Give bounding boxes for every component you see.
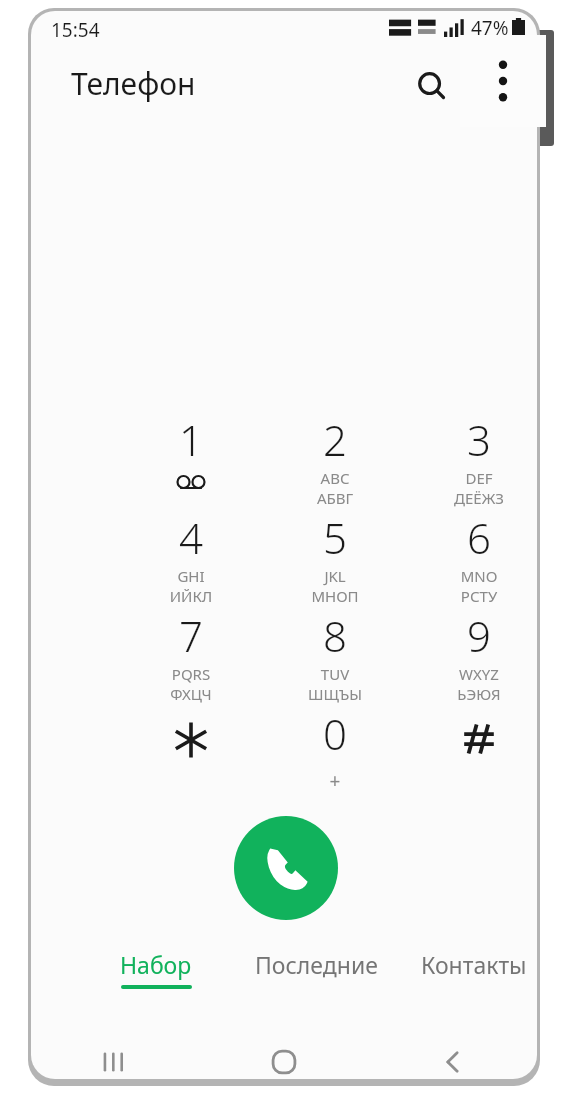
staticText: 8	[285, 607, 385, 664]
staticText: Телефон	[71, 63, 196, 104]
staticText: 7	[141, 607, 241, 664]
staticText: +	[285, 768, 385, 794]
staticText: 3	[429, 411, 529, 468]
button[interactable]: Набор	[91, 949, 221, 1005]
button[interactable]	[141, 705, 241, 801]
staticText: АБВГ	[285, 488, 385, 507]
staticText: PQRS	[141, 664, 241, 684]
staticText: ABC	[285, 468, 385, 488]
button[interactable]: 9	[429, 607, 529, 703]
button[interactable]: 6	[429, 509, 529, 605]
staticText: 6	[429, 509, 529, 566]
staticText: 47%	[471, 15, 509, 41]
button[interactable]: 5	[285, 509, 385, 605]
staticText: ИЙКЛ	[141, 586, 241, 605]
button[interactable]: Последние	[231, 949, 401, 997]
button[interactable]: 8	[285, 607, 385, 703]
button[interactable]: 7	[141, 607, 241, 703]
button[interactable]: 0	[285, 705, 385, 801]
staticText: ФХЦЧ	[141, 684, 241, 703]
staticText: Набор	[120, 949, 192, 980]
staticText: 9	[429, 607, 529, 664]
button[interactable]: Call	[234, 816, 338, 920]
staticText: ШЩЪЫ	[285, 684, 385, 703]
staticText: 1	[141, 411, 241, 468]
staticText: 2	[285, 411, 385, 468]
staticText: TUV	[285, 664, 385, 684]
staticText: МНОП	[285, 586, 385, 605]
button[interactable]: More options	[460, 35, 546, 127]
staticText: MNO	[429, 566, 529, 586]
button[interactable]: Search	[404, 58, 460, 114]
staticText: 5	[285, 509, 385, 566]
staticText: Последние	[255, 949, 378, 980]
staticText: ДЕЁЖЗ	[429, 488, 529, 507]
button[interactable]: 3	[429, 411, 529, 507]
button[interactable]: 2	[285, 411, 385, 507]
staticText: JKL	[285, 566, 385, 586]
button[interactable]	[429, 705, 529, 801]
staticText: DEF	[429, 468, 529, 488]
button[interactable]: Контакты	[399, 949, 537, 997]
staticText: 0	[285, 705, 385, 762]
staticText: WXYZ	[429, 664, 529, 684]
staticText: ЬЭЮЯ	[429, 684, 529, 703]
staticText: Контакты	[421, 949, 527, 980]
button[interactable]: 4	[141, 509, 241, 605]
staticText: 15:54	[51, 17, 100, 43]
button[interactable]: 1	[141, 411, 241, 507]
staticText: GHI	[141, 566, 241, 586]
staticText: 4	[141, 509, 241, 566]
button[interactable]: Back	[368, 1031, 537, 1079]
staticText: РСТУ	[429, 586, 529, 605]
button[interactable]: Home	[199, 1031, 368, 1079]
button[interactable]: Recents	[31, 1031, 199, 1079]
